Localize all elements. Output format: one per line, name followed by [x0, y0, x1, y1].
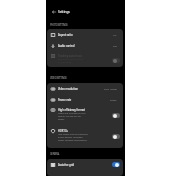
- staticText: 4:3: [113, 33, 117, 36]
- button[interactable]: Aspect ratio: [47, 29, 123, 40]
- staticText: HDR videos may look different across dev…: [58, 133, 88, 142]
- staticText: High efficiency format: [58, 108, 85, 112]
- button[interactable]: Tracking auto-focus: [47, 50, 123, 67]
- staticText: GENERAL: [50, 152, 60, 156]
- staticText: Assistive grid: [58, 163, 75, 167]
- staticText: FHD 1080p: [104, 87, 117, 90]
- staticText: Frame rate: [58, 98, 72, 102]
- staticText: Videos are recorded in HEVC format. HD a…: [58, 112, 86, 121]
- staticText: Settings: [58, 10, 70, 14]
- button[interactable]: Frame rate: [47, 94, 123, 105]
- button[interactable]: Assistive grid: [47, 159, 123, 170]
- staticText: Audio control: [58, 44, 75, 48]
- staticText: HDR10+: [58, 129, 68, 133]
- staticText: Aspect ratio: [58, 33, 73, 37]
- staticText: VIDEO SETTINGS: [50, 76, 67, 80]
- button[interactable]: Toggle setting: [112, 113, 120, 118]
- button[interactable]: Video resolution: [47, 83, 123, 94]
- staticText: PHOTO SETTINGS: [50, 23, 68, 27]
- staticText: 60fps: [110, 98, 117, 101]
- staticText: Video resolution: [58, 87, 78, 91]
- button[interactable]: Toggle setting: [112, 58, 120, 63]
- button[interactable]: Navigate back: [46, 5, 125, 18]
- button[interactable]: Audio control: [47, 40, 123, 51]
- button[interactable]: Navigate back: [51, 9, 56, 14]
- button[interactable]: High efficiency format: [47, 104, 123, 125]
- button[interactable]: HDR10+: [47, 125, 123, 146]
- button[interactable]: Toggle setting: [112, 134, 120, 139]
- staticText: Tracking auto-focus: [58, 54, 82, 58]
- staticText: Off: [113, 44, 117, 47]
- button[interactable]: Toggle setting: [112, 162, 120, 167]
